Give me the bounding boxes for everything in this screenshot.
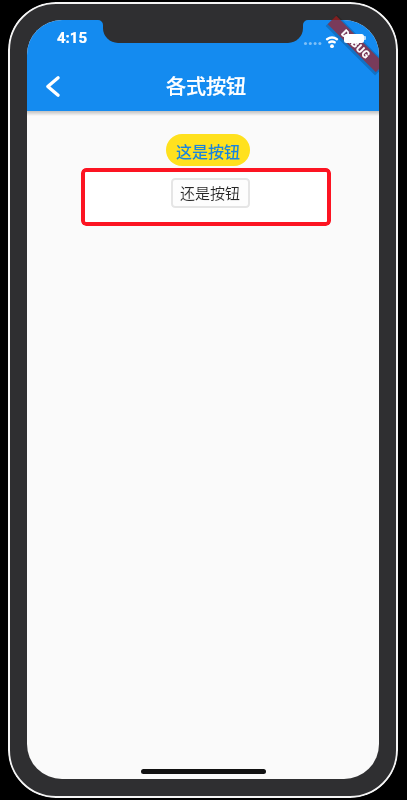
staticText: 这是按钮 xyxy=(176,139,241,162)
staticText: 各式按钮 xyxy=(166,71,246,100)
button[interactable]: 还是按钮 xyxy=(171,178,250,208)
staticText: 还是按钮 xyxy=(180,182,241,204)
button[interactable]: 这是按钮 xyxy=(166,134,250,166)
button[interactable] xyxy=(34,67,72,105)
staticText: DEBUG xyxy=(339,27,373,61)
staticText: 4:15 xyxy=(57,29,88,47)
